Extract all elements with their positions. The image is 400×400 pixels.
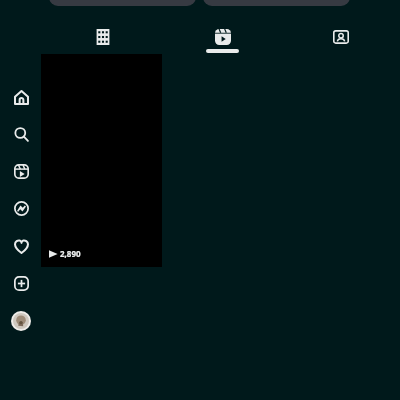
button[interactable]: 2,890 xyxy=(41,54,162,267)
button[interactable]: Search xyxy=(7,120,35,148)
button[interactable]: Reels xyxy=(163,0,282,56)
button[interactable]: Posts xyxy=(43,0,162,56)
button[interactable]: Messages xyxy=(7,194,35,222)
button[interactable]: Home xyxy=(7,83,35,111)
button[interactable]: Create xyxy=(7,269,35,297)
button[interactable] xyxy=(203,0,350,6)
button[interactable]: Reels xyxy=(7,157,35,185)
button[interactable]: Tagged xyxy=(281,0,400,56)
staticText: 2,890 xyxy=(60,248,81,259)
button[interactable]: Profile xyxy=(11,311,31,331)
button[interactable]: Activity xyxy=(7,232,35,260)
button[interactable] xyxy=(49,0,196,6)
